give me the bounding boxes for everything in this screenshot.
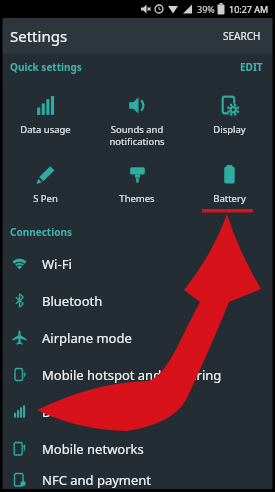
- staticText: SEARCH: [223, 29, 261, 43]
- staticText: Quick settings: [10, 60, 82, 74]
- staticText: Data usage: [20, 123, 71, 136]
- staticText: NFC and payment: [42, 471, 152, 489]
- button[interactable]: NFC and payment: [0, 467, 275, 492]
- button[interactable]: Mobile hotspot and tethering: [0, 356, 275, 393]
- staticText: 39%: [197, 3, 215, 15]
- button[interactable]: Display: [183, 80, 275, 149]
- button[interactable]: Data usage: [0, 80, 91, 149]
- button[interactable]: Airplane mode: [0, 319, 275, 356]
- staticText: Themes: [119, 192, 155, 205]
- staticText: Display: [213, 123, 246, 136]
- staticText: Battery: [213, 192, 246, 205]
- staticText: Data usage: [42, 403, 112, 421]
- staticText: Sounds and notifications: [109, 123, 165, 148]
- staticText: Settings: [10, 26, 68, 46]
- staticText: EDIT: [240, 60, 263, 74]
- staticText: S Pen: [33, 192, 58, 205]
- button[interactable]: EDIT: [238, 58, 265, 76]
- button[interactable]: Battery: [183, 149, 275, 218]
- staticText: Bluetooth: [42, 292, 103, 310]
- staticText: Mobile networks: [42, 440, 144, 458]
- staticText: Wi-Fi: [42, 255, 72, 273]
- staticText: Connections: [10, 225, 72, 239]
- staticText: 10:27 AM: [229, 3, 269, 15]
- button[interactable]: S Pen: [0, 149, 91, 218]
- button[interactable]: Themes: [91, 149, 183, 218]
- button[interactable]: Wi-Fi: [0, 245, 275, 282]
- staticText: Airplane mode: [42, 329, 132, 347]
- staticText: Mobile hotspot and tethering: [42, 366, 222, 384]
- button[interactable]: Sounds and notifications: [91, 80, 183, 149]
- button[interactable]: SEARCH: [219, 25, 265, 47]
- button[interactable]: Mobile networks: [0, 430, 275, 467]
- button[interactable]: Data usage: [0, 393, 275, 430]
- button[interactable]: Bluetooth: [0, 282, 275, 319]
